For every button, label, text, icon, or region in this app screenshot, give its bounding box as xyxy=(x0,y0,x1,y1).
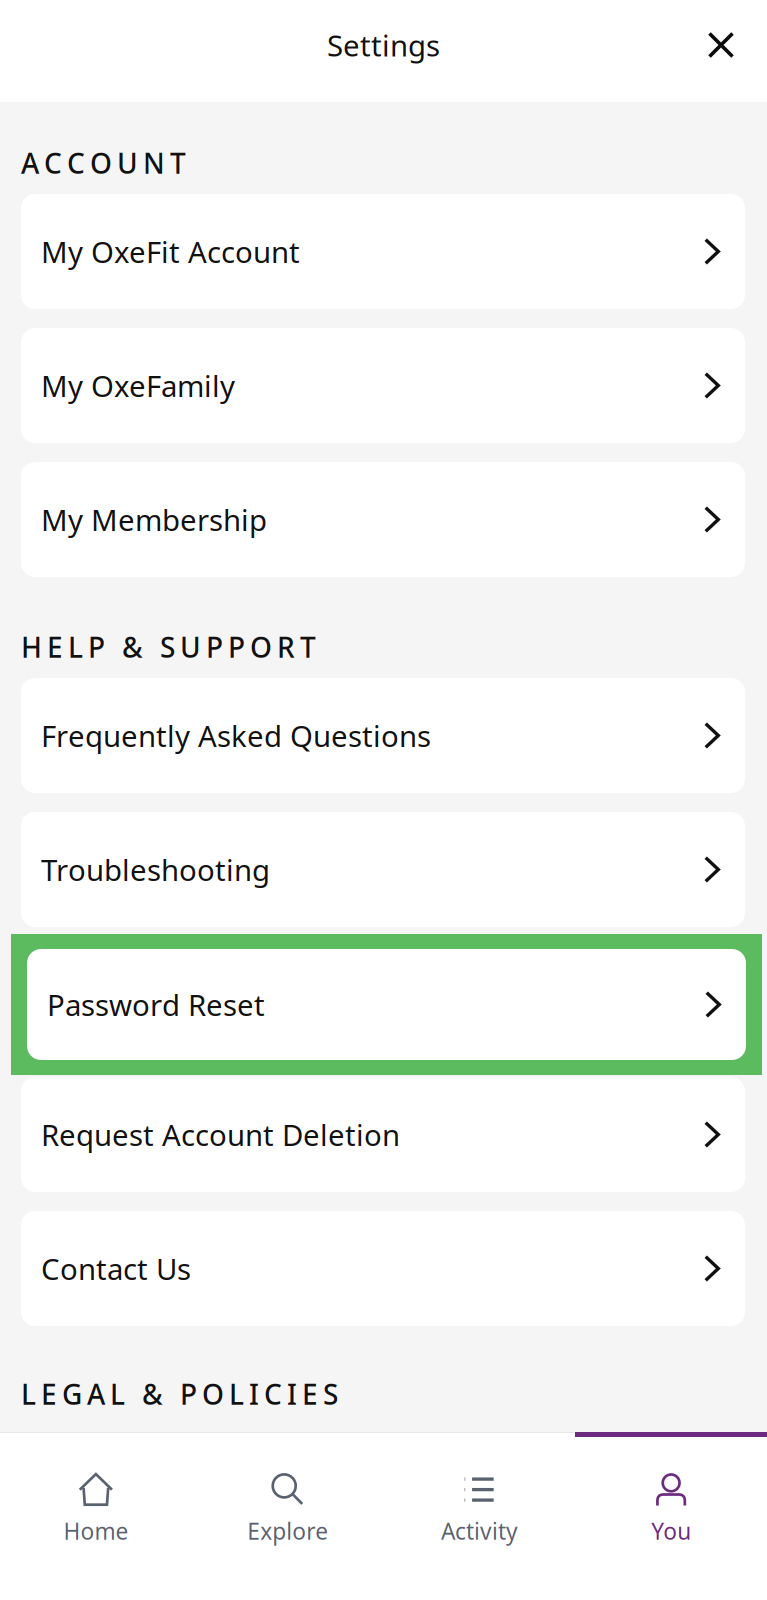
staticText: Home xyxy=(63,1516,128,1546)
button[interactable]: My OxeFit Account xyxy=(21,194,745,309)
staticText: My Membership xyxy=(41,500,267,539)
staticText: C xyxy=(44,144,62,182)
staticText: L xyxy=(229,1375,244,1413)
staticText: My OxeFamily xyxy=(41,366,235,405)
staticText: Explore xyxy=(247,1516,328,1546)
staticText: O xyxy=(90,144,112,182)
button[interactable]: Explore xyxy=(192,1432,384,1600)
staticText: Frequently Asked Questions xyxy=(41,716,431,755)
button[interactable]: Contact Us xyxy=(21,1211,745,1326)
button[interactable]: My OxeFamily xyxy=(21,328,745,443)
staticText: A xyxy=(87,1375,105,1413)
button[interactable]: You xyxy=(575,1432,767,1600)
staticText: N xyxy=(143,144,165,182)
staticText: H xyxy=(21,628,42,666)
staticText: L xyxy=(110,1375,125,1413)
staticText: You xyxy=(651,1516,691,1546)
staticText: E xyxy=(41,1375,57,1413)
staticText: P xyxy=(228,628,245,666)
staticText: My OxeFit Account xyxy=(41,232,300,271)
staticText: R xyxy=(277,628,295,666)
staticText: S xyxy=(160,628,175,666)
staticText: E xyxy=(302,1375,318,1413)
staticText: C xyxy=(264,1375,282,1413)
staticText: T xyxy=(170,144,186,182)
staticText: P xyxy=(206,628,223,666)
staticText: & xyxy=(122,628,143,666)
staticText: T xyxy=(300,628,316,666)
button[interactable]: Frequently Asked Questions xyxy=(21,678,745,793)
staticText: & xyxy=(142,1375,163,1413)
button[interactable]: Request Account Deletion xyxy=(21,1077,745,1192)
button[interactable]: Password Reset xyxy=(27,949,746,1060)
staticText: S xyxy=(323,1375,338,1413)
staticText: Settings xyxy=(327,25,440,64)
staticText: P xyxy=(88,628,105,666)
staticText: U xyxy=(117,144,138,182)
staticText: O xyxy=(250,628,272,666)
staticText: A xyxy=(21,144,39,182)
staticText: E xyxy=(47,628,63,666)
staticText: L xyxy=(68,628,83,666)
button[interactable]: Close xyxy=(693,17,749,73)
staticText: P xyxy=(180,1375,197,1413)
staticText: I xyxy=(249,1375,259,1413)
staticText: I xyxy=(287,1375,297,1413)
button[interactable]: Home xyxy=(0,1432,192,1600)
staticText: Password Reset xyxy=(47,985,265,1024)
staticText: Troubleshooting xyxy=(41,850,270,889)
staticText: C xyxy=(67,144,85,182)
staticText: O xyxy=(202,1375,224,1413)
button[interactable]: Activity xyxy=(383,1432,575,1600)
staticText: Activity xyxy=(441,1516,518,1546)
staticText: U xyxy=(180,628,201,666)
staticText: L xyxy=(21,1375,36,1413)
staticText: G xyxy=(62,1375,82,1413)
button[interactable]: Troubleshooting xyxy=(21,812,745,927)
staticText: Request Account Deletion xyxy=(41,1115,400,1154)
staticText: Contact Us xyxy=(41,1249,191,1288)
button[interactable]: My Membership xyxy=(21,462,745,577)
